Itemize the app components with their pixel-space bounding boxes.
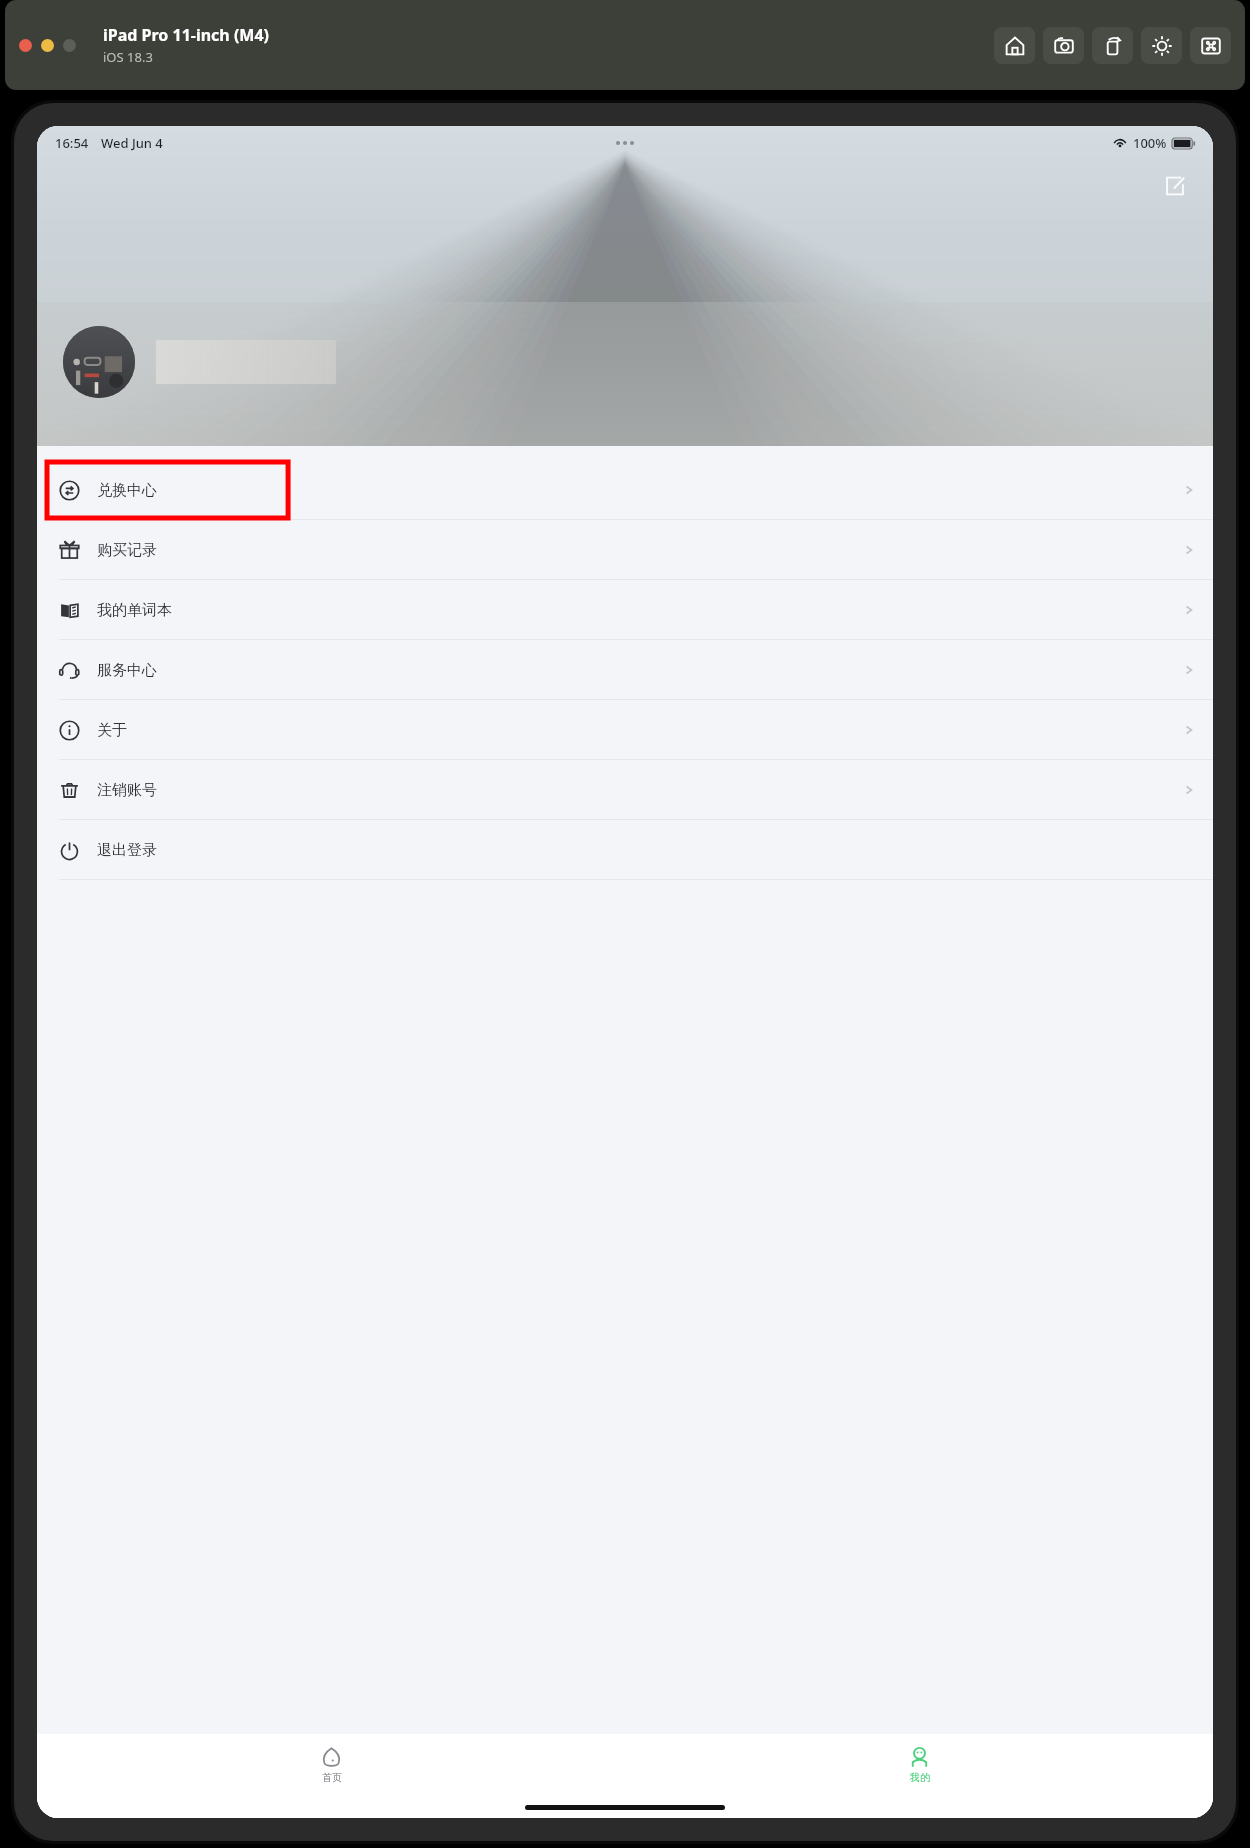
button[interactable]: Screenshot (1043, 27, 1084, 64)
staticText: 退出登录 (97, 841, 157, 860)
staticText: iPad Pro 11-inch (M4) (103, 24, 270, 46)
staticText: 关于 (97, 721, 127, 740)
staticText: 兑换中心 (97, 481, 157, 500)
button[interactable]: Home (994, 27, 1035, 64)
staticText: 我的 (910, 1771, 930, 1784)
button[interactable]: 我的单词本 (37, 580, 1213, 640)
button[interactable]: 关于 (37, 700, 1213, 760)
staticText: 购买记录 (97, 541, 157, 560)
button[interactable]: 服务中心 (37, 640, 1213, 700)
button[interactable]: 我的 (625, 1734, 1213, 1796)
staticText: 16:54 (55, 134, 89, 152)
button[interactable]: 首页 (37, 1734, 625, 1796)
button[interactable]: Keyboard shortcuts (1190, 27, 1231, 64)
button[interactable]: 兑换中心 (37, 460, 1213, 520)
button[interactable]: 购买记录 (37, 520, 1213, 580)
button[interactable] (63, 326, 135, 398)
button[interactable]: Window control (63, 39, 76, 52)
staticText: 注销账号 (97, 781, 157, 800)
staticText: iOS 18.3 (103, 48, 153, 66)
button[interactable]: 注销账号 (37, 760, 1213, 820)
button[interactable]: Appearance (1141, 27, 1182, 64)
staticText: 服务中心 (97, 661, 157, 680)
staticText: 100% (1133, 134, 1167, 152)
staticText: Wed Jun 4 (101, 134, 163, 152)
staticText: 首页 (322, 1771, 342, 1784)
button[interactable]: Window control (19, 39, 32, 52)
button[interactable]: Window control (41, 39, 54, 52)
button[interactable]: 退出登录 (37, 820, 1213, 880)
staticText: 我的单词本 (97, 601, 172, 620)
button[interactable]: Edit profile (1159, 170, 1191, 202)
button[interactable]: Rotate (1092, 27, 1133, 64)
